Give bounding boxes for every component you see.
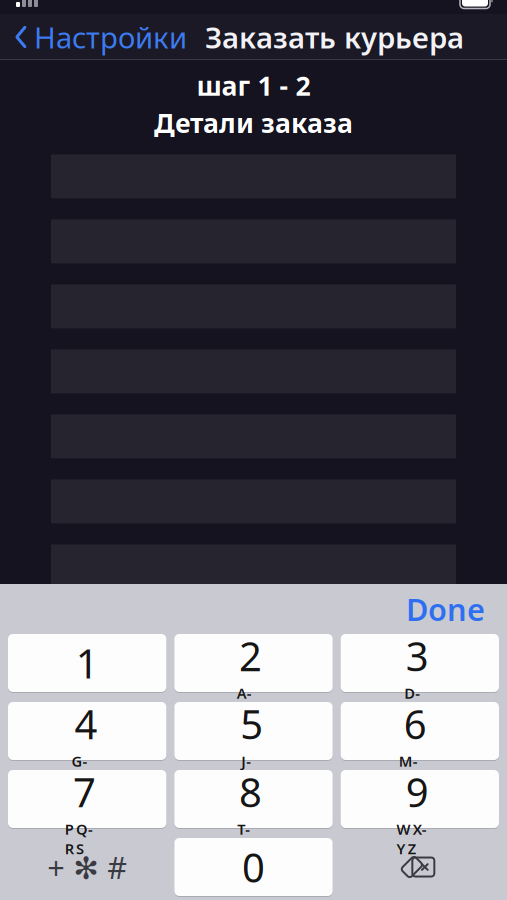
staticText: DEF [404, 683, 430, 722]
button[interactable]: 4 [8, 702, 166, 760]
button[interactable]: 1 [8, 634, 166, 692]
staticText: 2 [239, 629, 262, 682]
staticText: шаг 1 - 2 [196, 68, 310, 103]
staticText: ABC [237, 683, 264, 722]
button[interactable]: 6 [341, 702, 499, 760]
staticText: Настройки [34, 17, 187, 56]
staticText: TUV [237, 819, 263, 858]
staticText: + ✻ # [47, 847, 127, 887]
button[interactable]: 0 [174, 838, 333, 896]
staticText: MNO [399, 751, 432, 790]
button[interactable]: 7 [8, 770, 166, 828]
button[interactable]: Delete [341, 838, 499, 896]
staticText: GHI [71, 751, 101, 790]
staticText: 3 [406, 629, 429, 682]
staticText: 5 [240, 697, 263, 750]
button[interactable]: Настройки [0, 11, 187, 62]
button[interactable]: 9 [341, 770, 499, 828]
button[interactable]: 2 [174, 634, 333, 692]
staticText: 4 [75, 697, 98, 750]
button[interactable]: 5 [174, 702, 333, 760]
staticText: Заказать курьера [205, 17, 464, 56]
staticText: 8 [239, 765, 262, 818]
staticText: WXYZ [396, 819, 438, 858]
staticText: PQRS [65, 819, 104, 858]
button[interactable]: 8 [174, 770, 333, 828]
button[interactable]: Done [390, 581, 501, 637]
staticText: 7 [73, 765, 96, 818]
staticText: 6 [404, 697, 427, 750]
staticText: Done [406, 589, 485, 629]
staticText: 1 [76, 636, 99, 689]
staticText: Детали заказа [154, 105, 353, 140]
staticText: 9 [406, 765, 429, 818]
button[interactable]: 3 [341, 634, 499, 692]
staticText: 0 [242, 840, 265, 893]
button[interactable]: Symbols [8, 838, 166, 896]
staticText: JKL [241, 751, 262, 790]
